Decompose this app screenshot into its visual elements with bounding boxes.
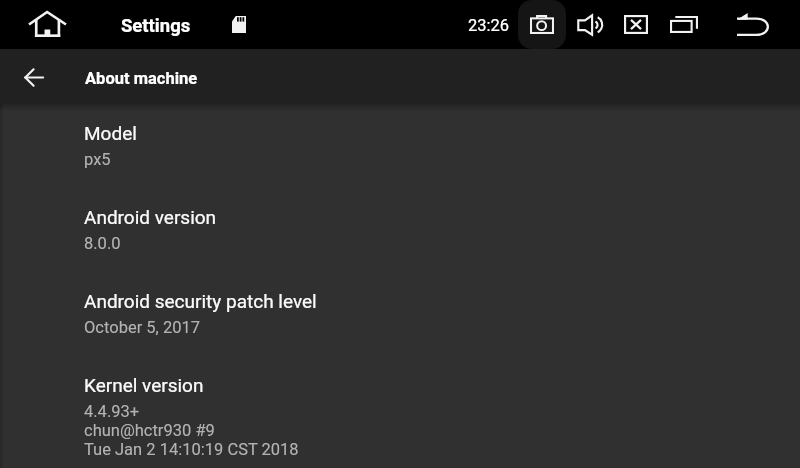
button[interactable]: Home: [23, 2, 72, 47]
button[interactable]: Back: [734, 8, 774, 41]
staticText: chun@hctr930 #9: [84, 421, 215, 440]
button[interactable]: Android security patch level: [0, 290, 800, 374]
staticText: px5: [84, 150, 111, 169]
staticText: October 5, 2017: [84, 318, 201, 337]
button[interactable]: Model: [0, 122, 800, 206]
staticText: About machine: [85, 69, 198, 88]
button[interactable]: Recents: [667, 9, 700, 40]
staticText: Android version: [84, 206, 217, 228]
button[interactable]: Navigate up: [14, 60, 53, 95]
button[interactable]: Close: [621, 9, 651, 40]
button[interactable]: Volume: [575, 8, 603, 41]
button[interactable]: Screenshot: [518, 0, 566, 49]
staticText: Tue Jan 2 14:10:19 CST 2018: [84, 440, 299, 459]
staticText: Model: [84, 122, 137, 144]
staticText: 4.4.93+: [84, 402, 140, 421]
staticText: Settings: [121, 15, 191, 37]
staticText: Android security patch level: [84, 290, 317, 312]
button[interactable]: Android version: [0, 206, 800, 290]
staticText: 8.0.0: [84, 234, 121, 253]
button[interactable]: Storage: [227, 8, 251, 41]
button[interactable]: Kernel version: [0, 374, 800, 458]
staticText: Kernel version: [84, 374, 204, 396]
staticText: 23:26: [468, 16, 510, 35]
